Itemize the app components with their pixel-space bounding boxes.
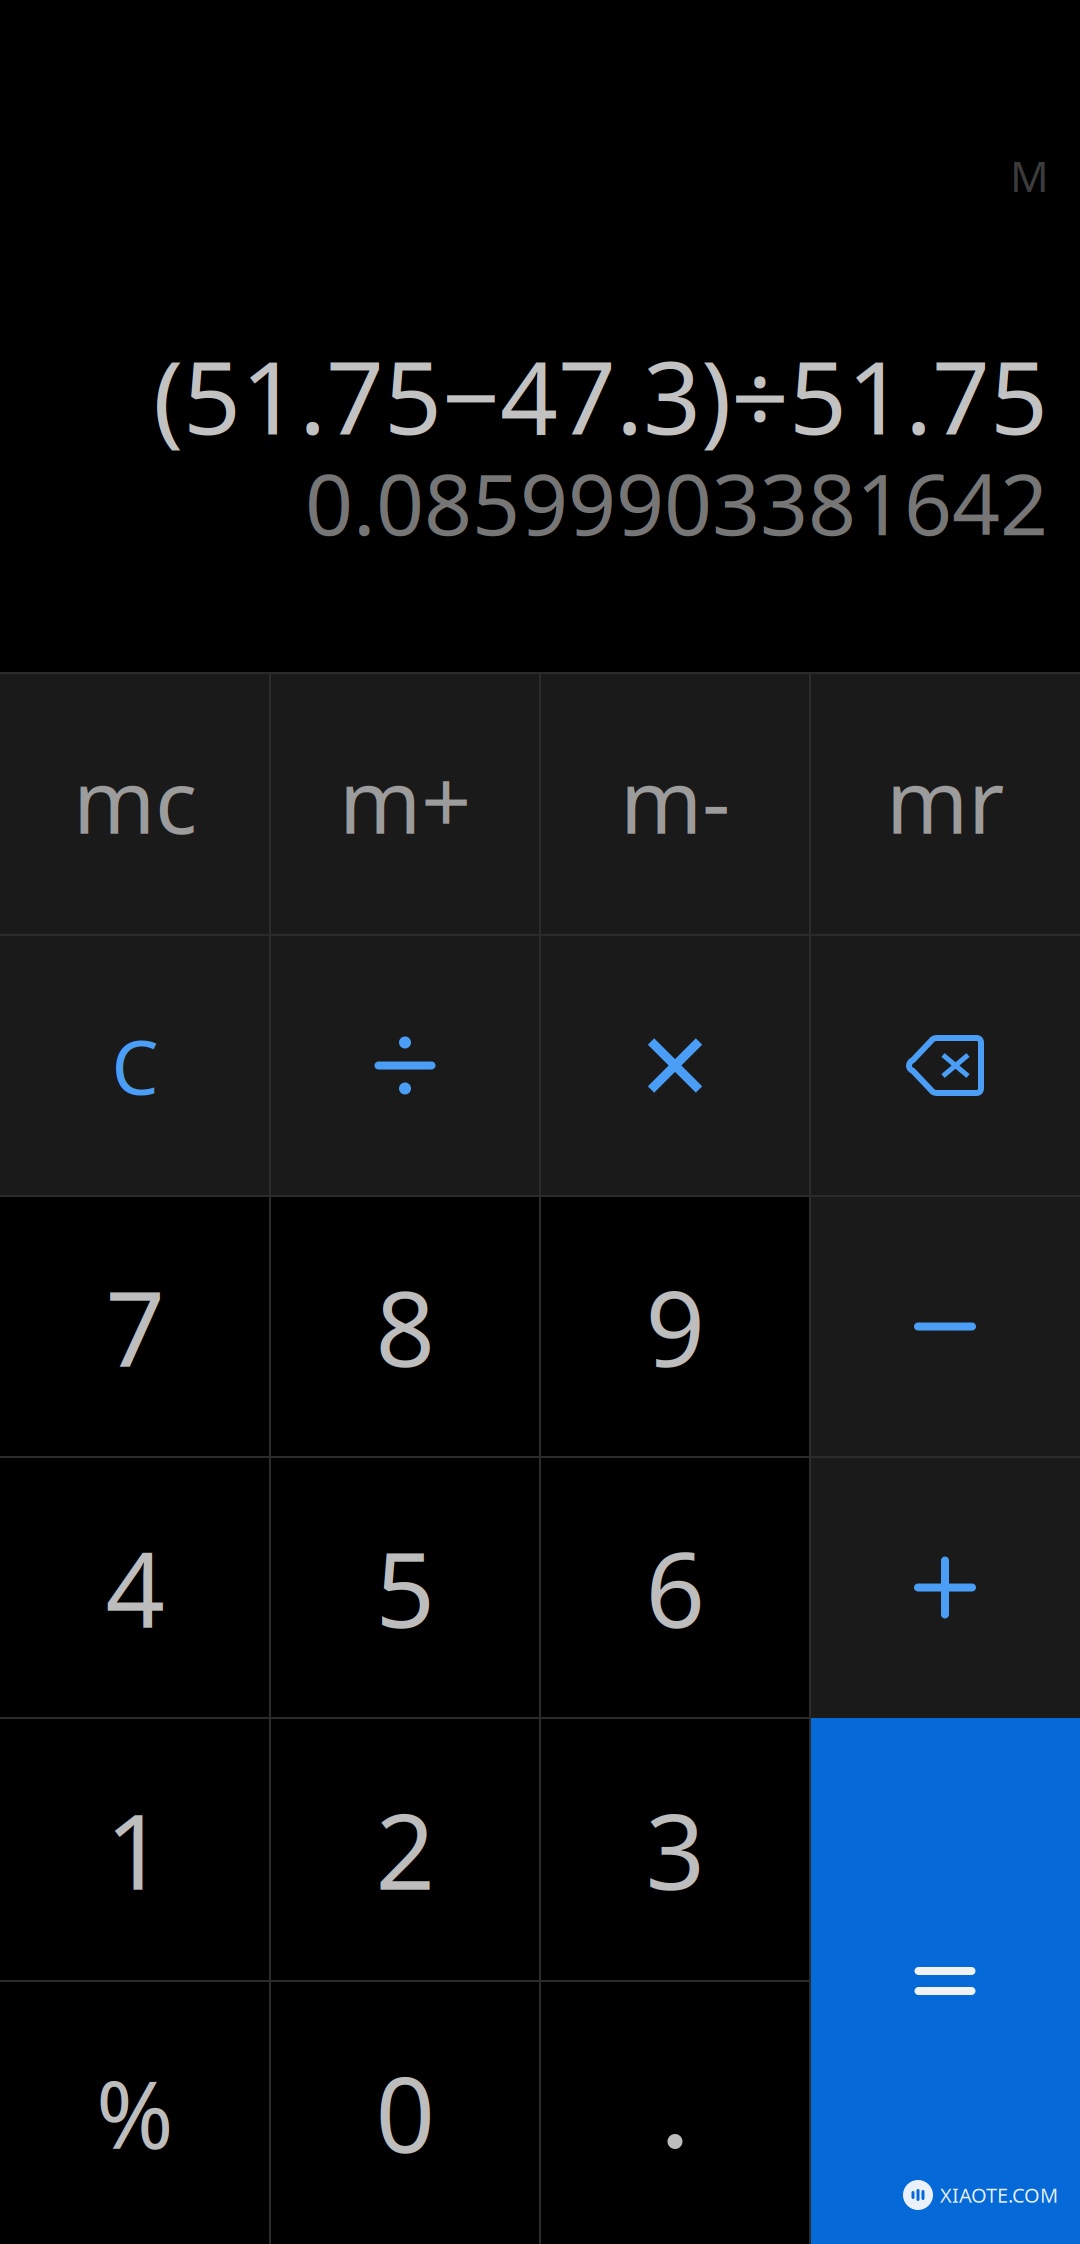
button[interactable]: Divide: [270, 935, 540, 1196]
staticText: 9: [645, 1257, 704, 1395]
button[interactable]: Multiply: [540, 935, 810, 1196]
button[interactable]: 4: [0, 1457, 270, 1718]
button[interactable]: 5: [270, 1457, 540, 1718]
staticText: 2: [375, 1780, 434, 1918]
button[interactable]: Minus: [810, 1196, 1080, 1457]
staticText: m-: [620, 741, 730, 858]
button[interactable]: mr: [810, 674, 1080, 935]
button[interactable]: m+: [270, 674, 540, 935]
staticText: 7: [105, 1257, 164, 1395]
staticText: 1: [105, 1780, 164, 1918]
staticText: M: [1010, 147, 1049, 204]
button[interactable]: 2: [270, 1718, 540, 1981]
button[interactable]: Equals: [810, 1718, 1080, 2244]
button[interactable]: Decimal point: [540, 1981, 810, 2244]
button[interactable]: %: [0, 1981, 270, 2244]
button[interactable]: C: [0, 935, 270, 1196]
staticText: 5: [375, 1518, 434, 1656]
button[interactable]: 9: [540, 1196, 810, 1457]
button[interactable]: 6: [540, 1457, 810, 1718]
button[interactable]: Plus: [810, 1457, 1080, 1718]
staticText: 4: [105, 1518, 164, 1656]
staticText: mr: [886, 741, 1004, 858]
button[interactable]: 0: [270, 1981, 540, 2244]
staticText: 0.08599903381642: [305, 447, 1048, 558]
staticText: mc: [73, 741, 197, 858]
button[interactable]: 3: [540, 1718, 810, 1981]
staticText: 6: [645, 1518, 704, 1656]
button[interactable]: Delete: [810, 935, 1080, 1196]
staticText: 0: [375, 2043, 434, 2181]
staticText: %: [96, 2050, 174, 2174]
staticText: (51.75−47.3)÷51.75: [153, 328, 1048, 463]
staticText: m+: [339, 741, 471, 858]
button[interactable]: 8: [270, 1196, 540, 1457]
button[interactable]: 7: [0, 1196, 270, 1457]
staticText: 8: [375, 1257, 434, 1395]
button[interactable]: m-: [540, 674, 810, 935]
staticText: 3: [645, 1780, 704, 1918]
button[interactable]: mc: [0, 674, 270, 935]
staticText: XIAOTE.COM: [940, 2182, 1058, 2208]
button[interactable]: 1: [0, 1718, 270, 1981]
staticText: C: [111, 1016, 158, 1115]
